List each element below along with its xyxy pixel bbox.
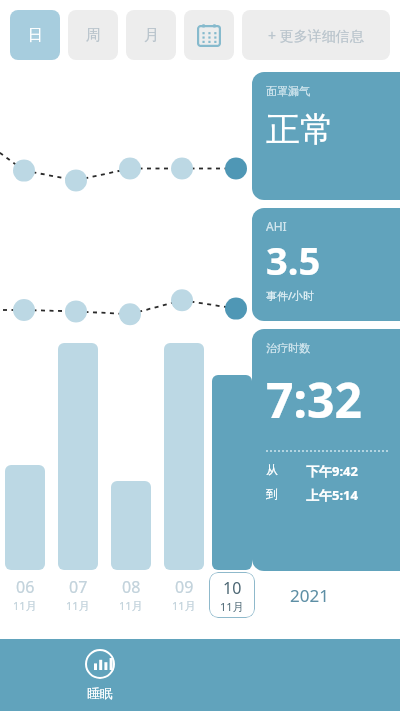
button[interactable]: [164, 343, 204, 570]
staticText: 从: [266, 462, 278, 477]
button[interactable]: [212, 375, 252, 570]
button[interactable]: 07: [58, 576, 98, 613]
staticText: AHI: [266, 218, 287, 234]
staticText: + 更多详细信息: [268, 26, 364, 45]
button[interactable]: 08: [111, 576, 151, 613]
staticText: 周: [86, 26, 101, 45]
button[interactable]: 月: [126, 10, 176, 60]
staticText: 日: [28, 26, 43, 45]
staticText: 11月: [172, 598, 196, 613]
button[interactable]: 周: [68, 10, 118, 60]
staticText: 08: [122, 576, 141, 598]
staticText: 10: [223, 577, 242, 599]
button[interactable]: 日: [10, 10, 60, 60]
button[interactable]: 面罩漏气: [252, 72, 400, 200]
staticText: 06: [16, 576, 35, 598]
staticText: 09: [175, 576, 194, 598]
button[interactable]: 06: [5, 576, 45, 613]
staticText: 11月: [13, 598, 37, 613]
staticText: 到: [266, 486, 278, 501]
button[interactable]: [5, 465, 45, 570]
staticText: 面罩漏气: [266, 84, 310, 98]
button[interactable]: AHI: [252, 208, 400, 321]
staticText: 治疗时数: [266, 341, 310, 355]
staticText: 上午5:14: [306, 486, 358, 504]
button[interactable]: 治疗时数: [252, 329, 400, 571]
staticText: 3.5: [266, 234, 321, 286]
staticText: 下午9:42: [306, 462, 358, 480]
button[interactable]: 09: [164, 576, 204, 613]
staticText: 11月: [119, 598, 143, 613]
button[interactable]: Calendar: [184, 10, 234, 60]
staticText: 11月: [66, 598, 90, 613]
button[interactable]: [58, 343, 98, 570]
staticText: 正常: [266, 108, 334, 151]
staticText: 7:32: [266, 367, 362, 432]
button[interactable]: + 更多详细信息: [242, 10, 390, 60]
staticText: 事件/小时: [266, 288, 315, 303]
button[interactable]: [111, 481, 151, 570]
staticText: 07: [69, 576, 88, 598]
staticText: 11月: [220, 599, 244, 614]
staticText: 月: [144, 26, 159, 45]
button[interactable]: 睡眠: [0, 639, 200, 711]
staticText: 2021: [290, 584, 329, 607]
button[interactable]: 10: [209, 572, 255, 618]
staticText: 睡眠: [87, 685, 113, 701]
